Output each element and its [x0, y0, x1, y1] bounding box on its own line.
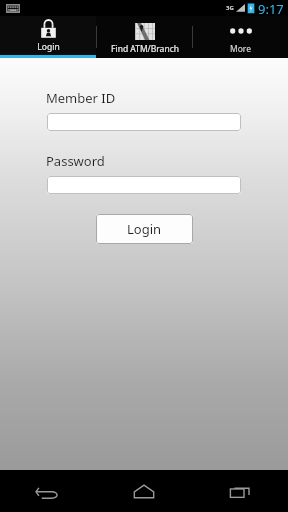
- button[interactable]: [47, 176, 241, 194]
- staticText: 3G: [226, 4, 234, 12]
- staticText: More: [230, 43, 251, 55]
- button[interactable]: Login: [0, 16, 96, 58]
- button[interactable]: Back: [0, 470, 96, 512]
- staticText: Login: [127, 220, 162, 238]
- button[interactable]: Find ATM/Branch: [97, 16, 192, 58]
- staticText: Member ID: [46, 89, 116, 107]
- staticText: 9:17: [258, 0, 284, 16]
- button[interactable]: [47, 113, 241, 131]
- button[interactable]: Login: [96, 214, 193, 244]
- staticText: Login: [37, 41, 60, 53]
- button[interactable]: Recent apps: [192, 470, 288, 512]
- staticText: Find ATM/Branch: [111, 43, 179, 55]
- button[interactable]: More: [193, 16, 288, 58]
- button[interactable]: Home: [96, 470, 192, 512]
- staticText: Password: [46, 152, 105, 170]
